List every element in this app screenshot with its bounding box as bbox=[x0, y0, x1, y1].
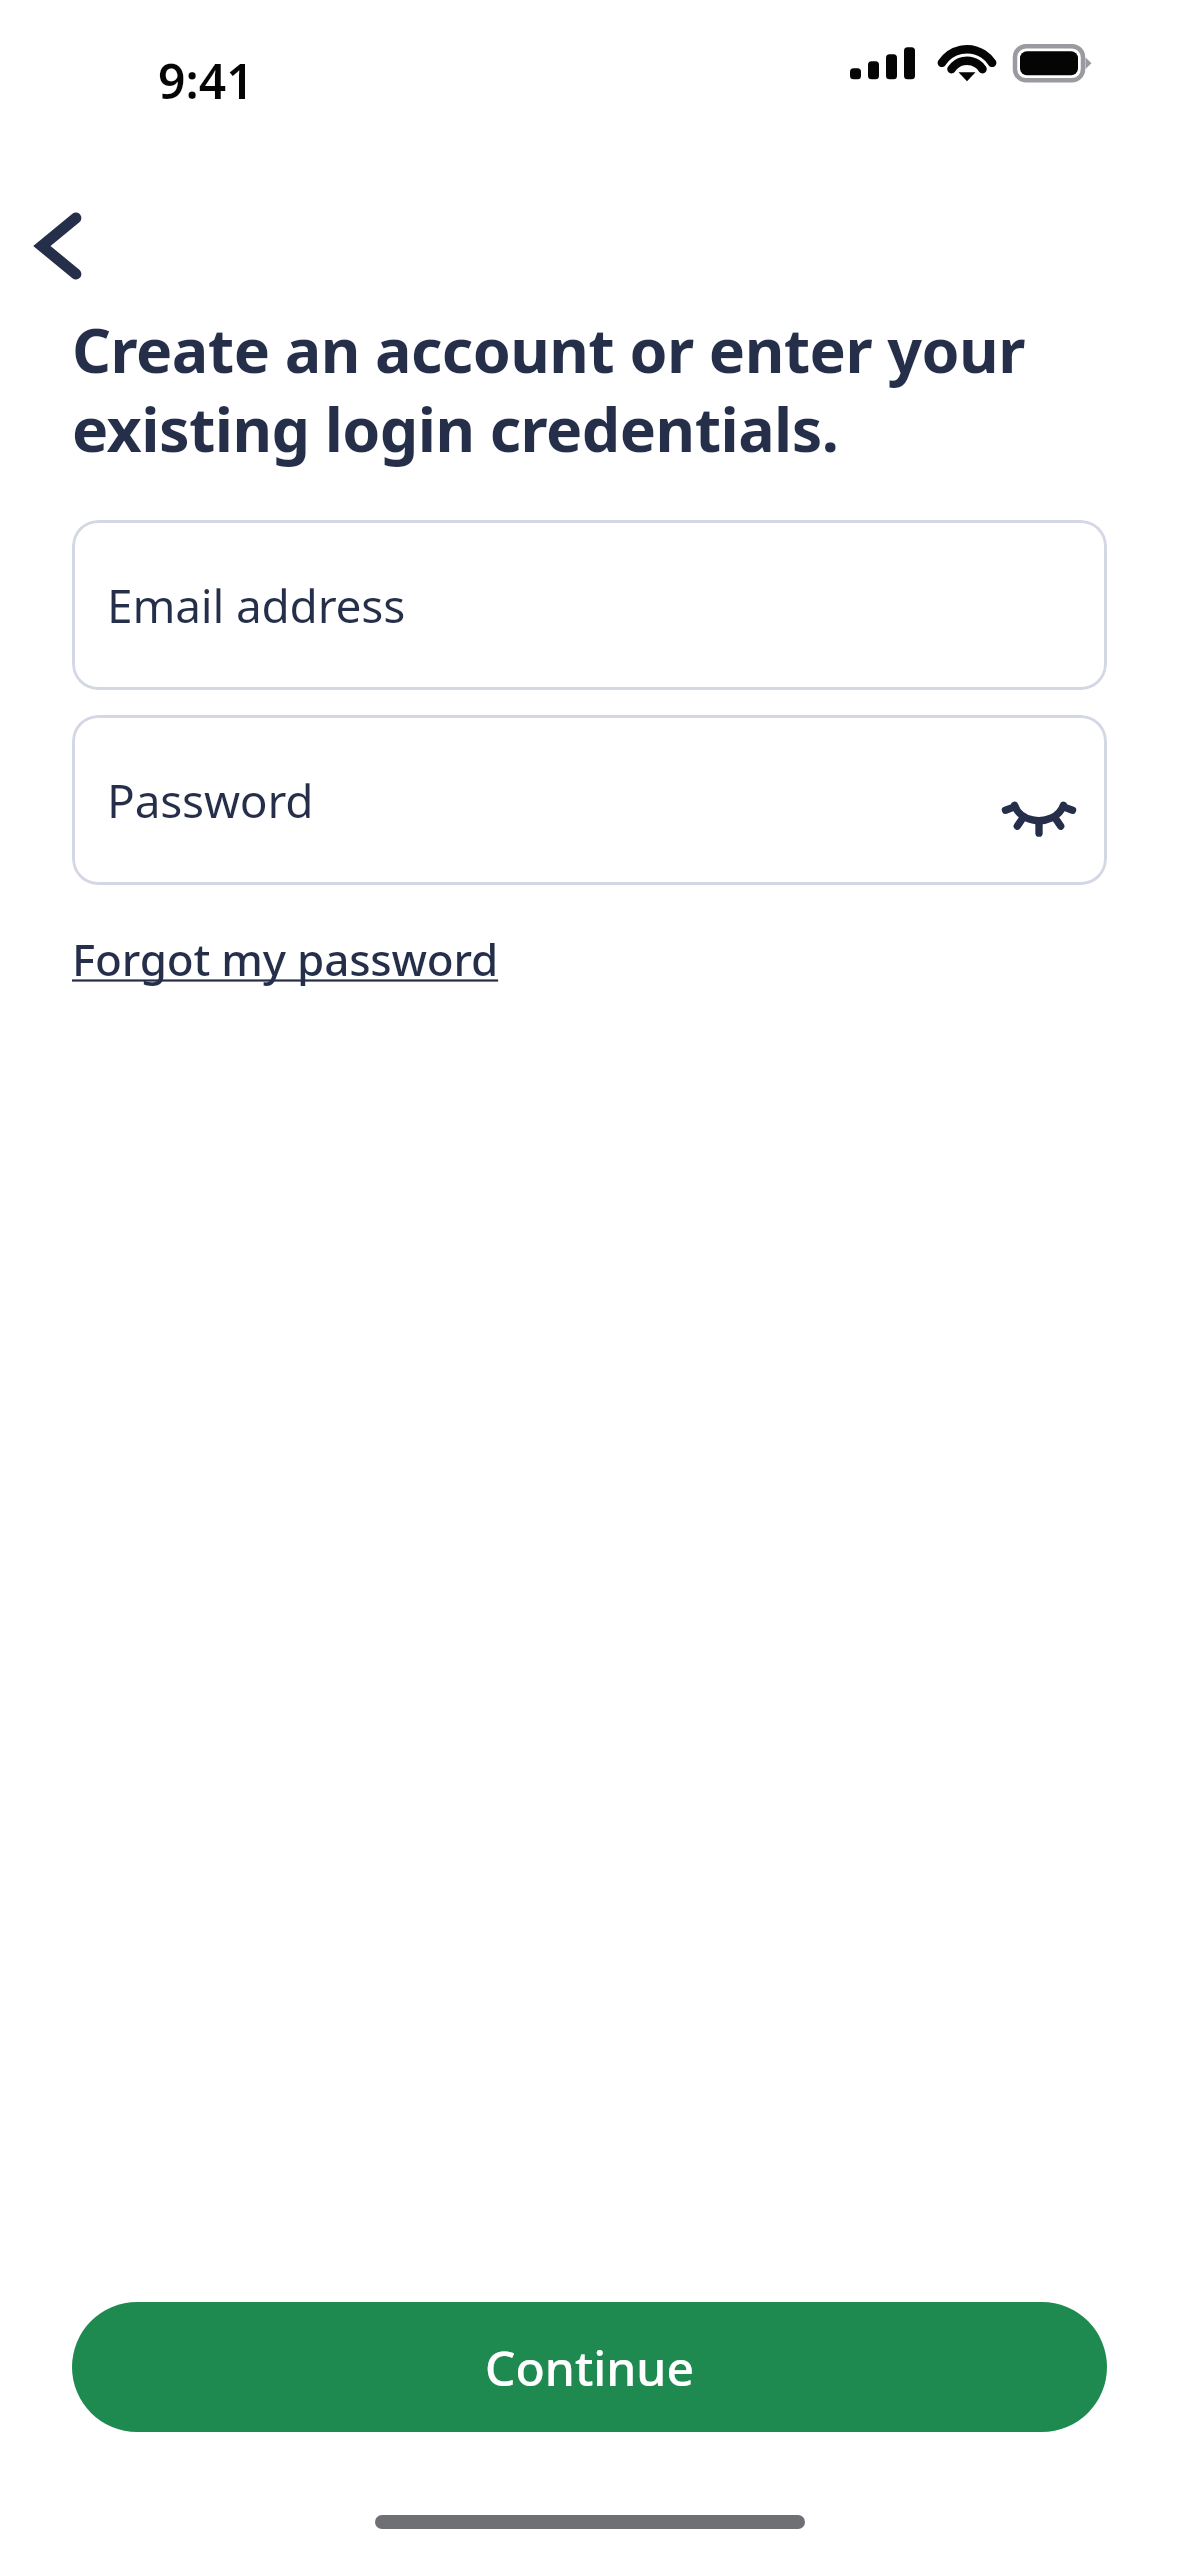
button[interactable]: Email address bbox=[72, 520, 1107, 690]
button[interactable]: Password bbox=[72, 715, 1107, 885]
staticText: 9:41 bbox=[158, 48, 254, 113]
button[interactable]: Back bbox=[8, 196, 104, 292]
staticText: Create an account or enter your existing… bbox=[72, 308, 1115, 470]
staticText: Forgot my password bbox=[72, 929, 499, 989]
button[interactable]: Continue bbox=[72, 2302, 1107, 2432]
staticText: Password bbox=[107, 769, 314, 832]
staticText: Continue bbox=[485, 2335, 694, 2400]
button[interactable]: Show password bbox=[993, 754, 1085, 846]
button[interactable]: Forgot my password bbox=[72, 929, 499, 989]
staticText: Email address bbox=[107, 574, 405, 637]
